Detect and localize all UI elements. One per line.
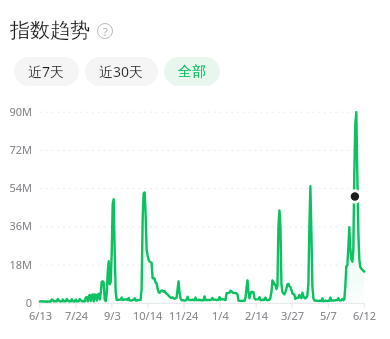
staticText: 5/7 xyxy=(320,308,337,323)
staticText: 10/14 xyxy=(133,308,163,323)
staticText: 6/13 xyxy=(29,308,52,323)
staticText: 72M xyxy=(9,142,32,157)
button[interactable]: 全部 xyxy=(164,57,220,86)
staticText: 2/14 xyxy=(245,308,268,323)
staticText: 90M xyxy=(9,104,32,119)
staticText: 11/24 xyxy=(169,308,199,323)
staticText: 36M xyxy=(9,218,32,233)
button[interactable]: 帮助 xyxy=(97,23,113,39)
staticText: 7/24 xyxy=(65,308,88,323)
staticText: 54M xyxy=(9,180,32,195)
staticText: 近30天 xyxy=(99,62,144,81)
staticText: ? xyxy=(103,24,108,39)
staticText: 1/4 xyxy=(212,308,229,323)
staticText: 近7天 xyxy=(28,62,65,81)
staticText: 3/27 xyxy=(281,308,304,323)
staticText: 指数趋势 xyxy=(10,18,90,43)
staticText: 18M xyxy=(9,257,32,272)
staticText: 9/3 xyxy=(104,308,121,323)
button[interactable]: 近30天 xyxy=(85,57,158,86)
button[interactable]: 近7天 xyxy=(14,57,79,86)
staticText: 全部 xyxy=(178,63,206,81)
staticText: 6/12 xyxy=(353,308,376,323)
staticText: 0 xyxy=(25,295,32,310)
